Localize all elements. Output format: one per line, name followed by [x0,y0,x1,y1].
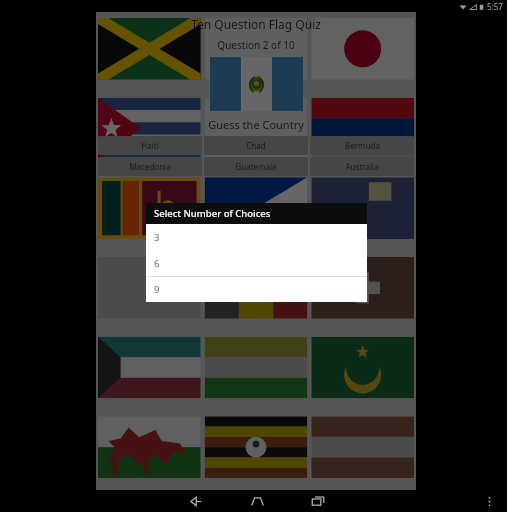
staticText: 5:57 [487,1,503,12]
staticText: Ten Question Flag Quiz [191,16,321,32]
staticText: Guess the Country [208,117,304,132]
button[interactable]: Back [182,490,210,512]
button[interactable]: Australia [310,157,414,176]
staticText: Guatemala [235,161,277,172]
button[interactable]: Home [243,490,271,512]
staticText: Australia [345,161,379,172]
staticText: Select Number of Choices [154,207,271,220]
staticText: Question 2 of 10 [217,38,295,52]
staticText: Haiti [141,140,159,151]
button[interactable]: Bermuda [310,136,414,155]
staticText: 9 [154,283,160,296]
button[interactable]: Guatemala [204,157,308,176]
button[interactable]: 9 [146,277,367,302]
staticText: Chad [246,140,266,151]
staticText: 3 [154,231,160,244]
button[interactable]: Haiti [98,136,202,155]
button[interactable]: 3 [146,224,367,250]
button[interactable]: Macedonia [98,157,202,176]
button[interactable]: 6 [146,250,367,276]
staticText: Bermuda [345,140,380,151]
button[interactable]: Chad [204,136,308,155]
button[interactable]: More options [479,490,499,512]
button[interactable]: Recent apps [304,490,332,512]
staticText: Macedonia [129,161,171,172]
staticText: 6 [154,257,160,270]
